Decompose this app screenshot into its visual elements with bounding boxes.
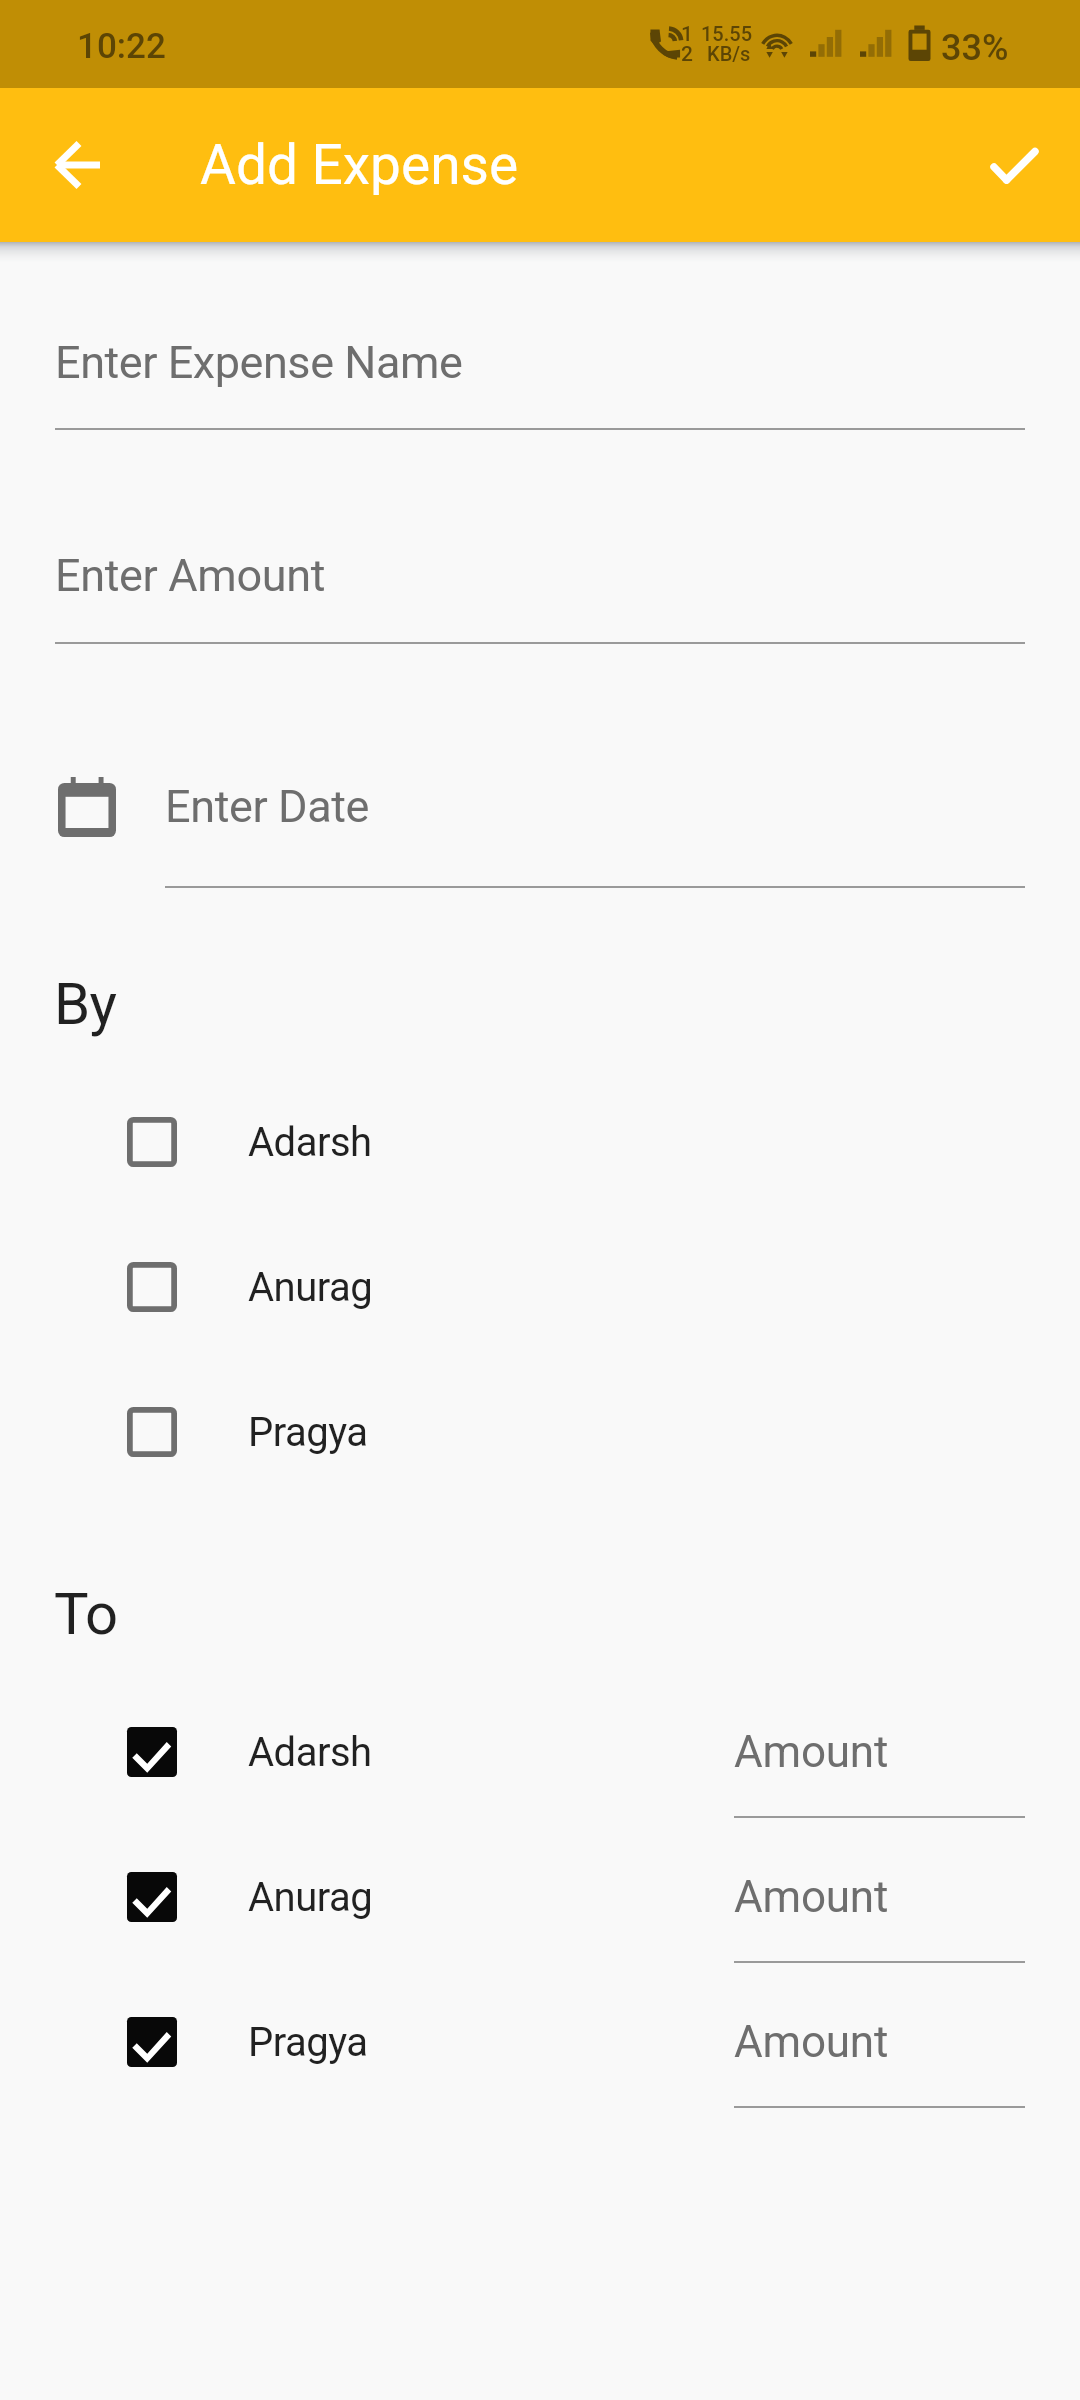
- staticText: Adarsh: [248, 1729, 372, 1776]
- button[interactable]: Enter Expense Name: [55, 316, 1025, 430]
- staticText: KB/s: [707, 42, 751, 65]
- staticText: Add Expense: [200, 133, 519, 197]
- button[interactable]: Amount: [734, 1861, 1025, 1973]
- button[interactable]: Save: [960, 110, 1070, 216]
- staticText: Pragya: [248, 1409, 368, 1456]
- staticText: Amount: [734, 1871, 889, 1923]
- staticText: By: [54, 970, 117, 1038]
- button[interactable]: Pick date: [55, 760, 1025, 888]
- staticText: To: [54, 1580, 118, 1648]
- staticText: Enter Amount: [55, 549, 326, 602]
- button[interactable]: Amount: [734, 1716, 1025, 1828]
- button[interactable]: Enter Amount: [55, 529, 1025, 644]
- staticText: Pragya: [248, 2019, 368, 2066]
- button[interactable]: Checked Anurag: [127, 1872, 177, 1922]
- other: Pick date: [58, 777, 116, 837]
- button[interactable]: Pragya: [0, 1383, 1080, 1481]
- staticText: 10:22: [77, 26, 166, 67]
- staticText: Amount: [734, 2016, 889, 2068]
- staticText: 2: [681, 42, 693, 67]
- button[interactable]: Anurag: [0, 1238, 1080, 1336]
- staticText: Amount: [734, 1726, 889, 1778]
- button[interactable]: Checked Pragya: [127, 2017, 177, 2067]
- staticText: 33%: [941, 27, 1009, 69]
- button[interactable]: Checked Adarsh: [127, 1727, 177, 1777]
- staticText: Anurag: [248, 1264, 373, 1311]
- button[interactable]: Amount: [734, 2006, 1025, 2118]
- staticText: 1: [681, 22, 693, 47]
- staticText: 15.55: [701, 22, 753, 45]
- staticText: Anurag: [248, 1874, 373, 1921]
- button[interactable]: Adarsh: [0, 1093, 1080, 1191]
- staticText: Adarsh: [248, 1119, 372, 1166]
- staticText: Enter Date: [165, 780, 370, 833]
- button[interactable]: Back: [22, 110, 132, 216]
- staticText: Enter Expense Name: [55, 336, 463, 389]
